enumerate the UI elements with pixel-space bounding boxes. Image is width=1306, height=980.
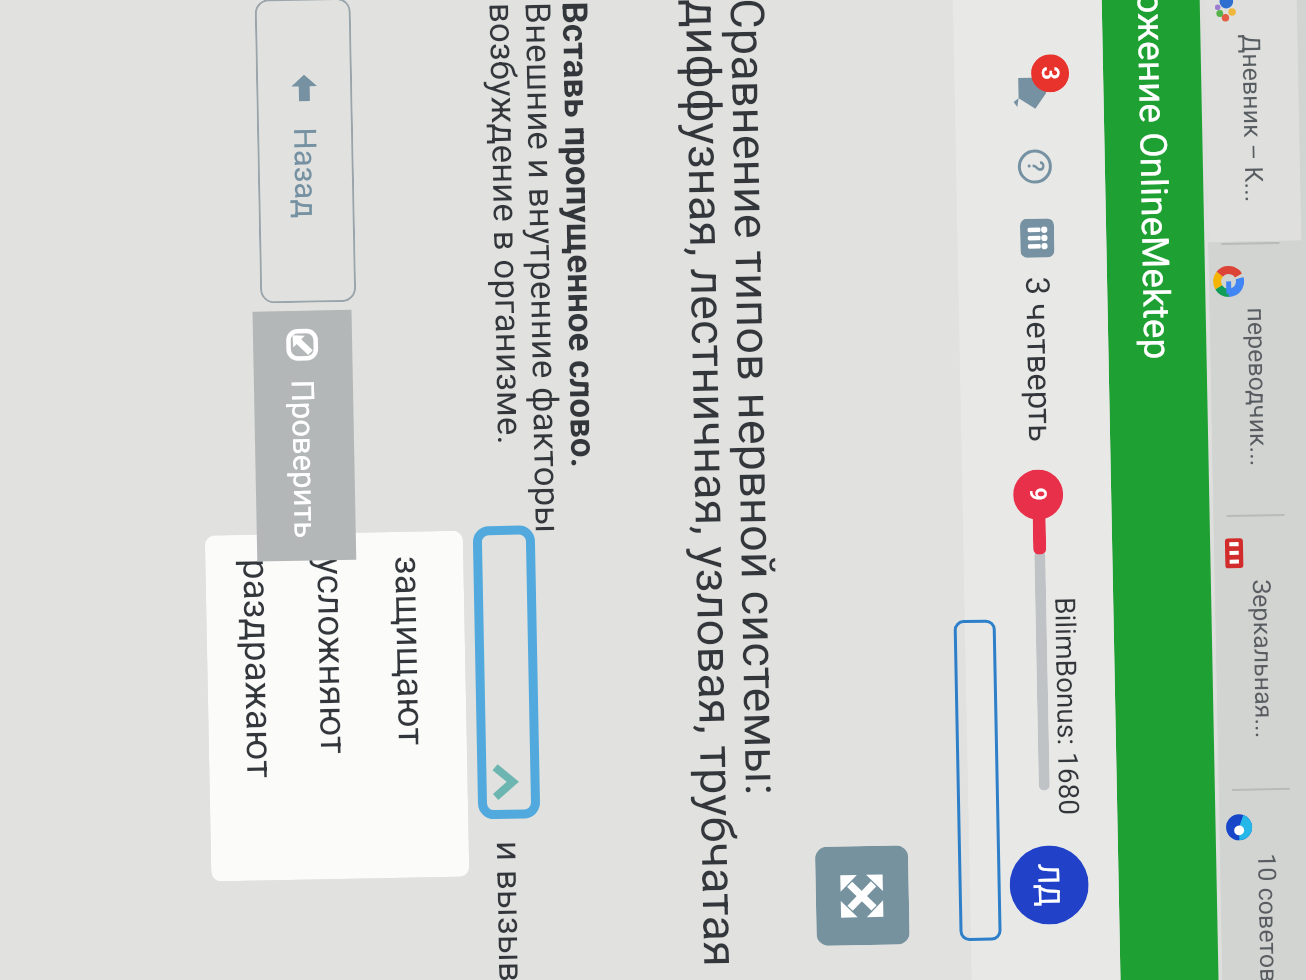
- staticText: ?: [1022, 160, 1049, 173]
- staticText: диффузная, лестничная, узловая, трубчата…: [675, 0, 748, 967]
- button[interactable]: ожение OnlineMektep: [1101, 0, 1219, 980]
- staticText: Дневник – К...: [1236, 34, 1269, 203]
- button[interactable]: Notifications: [1013, 75, 1050, 112]
- staticText: BilimBonus: 1680: [1048, 597, 1085, 815]
- staticText: и вызыва: [488, 840, 532, 980]
- button[interactable]: Help: [1017, 149, 1052, 184]
- staticText: ожение OnlineMektep: [1128, 0, 1178, 360]
- button[interactable]: Fullscreen: [815, 845, 910, 946]
- staticText: 3 четверть: [1018, 276, 1060, 443]
- staticText: усложняют: [308, 557, 355, 755]
- staticText: Назад: [287, 127, 325, 219]
- button[interactable]: [954, 619, 1002, 941]
- staticText: 10 советов: [1252, 853, 1284, 980]
- staticText: защищают: [386, 555, 433, 746]
- staticText: Сравнение типов нервной системы:: [720, 0, 790, 796]
- button[interactable]: Дневник – К...: [1203, 0, 1301, 242]
- staticText: Зеркальная...: [1247, 579, 1279, 739]
- button[interactable]: Назад: [254, 0, 356, 303]
- button[interactable]: ЛД: [1009, 845, 1089, 925]
- button[interactable]: Statistics: [1020, 218, 1055, 258]
- button[interactable]: Проверить: [252, 310, 356, 562]
- button[interactable]: Зеркальная...: [1214, 512, 1306, 788]
- staticText: Внешние и внутренние факторы: [517, 2, 568, 534]
- button[interactable]: 10 советов: [1219, 786, 1306, 980]
- staticText: возбуждение в организме.: [481, 2, 530, 445]
- staticText: Проверить: [285, 379, 324, 539]
- button[interactable]: усложняют: [293, 532, 373, 880]
- staticText: Вставь пропущенное слово.: [554, 1, 604, 469]
- button[interactable]: раздражают: [219, 534, 299, 881]
- button[interactable]: [473, 525, 540, 819]
- button[interactable]: защищают: [371, 531, 451, 878]
- staticText: 3: [1036, 66, 1064, 80]
- button[interactable]: переводчик...: [1208, 240, 1306, 514]
- staticText: раздражают: [234, 558, 281, 779]
- staticText: переводчик...: [1242, 307, 1274, 467]
- staticText: ЛД: [1031, 863, 1066, 907]
- staticText: 9: [1024, 487, 1051, 502]
